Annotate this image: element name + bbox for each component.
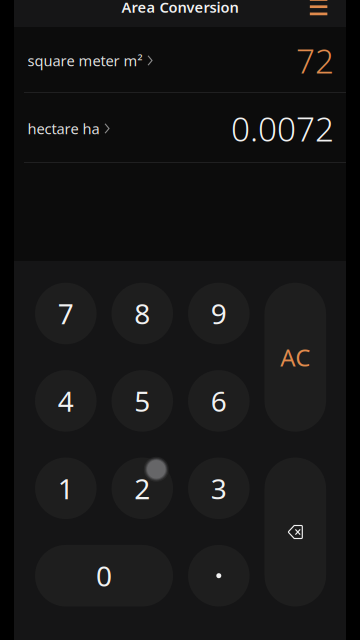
staticText: Area Conversion — [121, 0, 238, 17]
staticText: 2 — [134, 470, 150, 507]
button[interactable]: 7 — [35, 283, 96, 344]
staticText: hectare ha — [27, 119, 99, 138]
button[interactable]: 6 — [188, 370, 250, 432]
button[interactable]: square meter m² — [14, 27, 346, 92]
button[interactable]: hectare ha — [14, 93, 346, 162]
staticText: 72 — [296, 38, 334, 83]
staticText: 7 — [58, 295, 74, 332]
staticText: 8 — [134, 295, 150, 332]
button[interactable]: 4 — [35, 370, 96, 432]
staticText: 4 — [58, 382, 74, 419]
staticText: 5 — [134, 382, 150, 419]
button[interactable]: Delete — [265, 458, 326, 606]
button[interactable]: 1 — [35, 458, 96, 519]
staticText: 6 — [211, 382, 227, 419]
staticText: AC — [280, 341, 310, 373]
button[interactable]: 2 — [112, 458, 173, 519]
button[interactable]: 8 — [112, 283, 173, 344]
staticText: 3 — [211, 470, 227, 507]
button[interactable]: Clear — [265, 283, 326, 432]
staticText: square meter m² — [27, 51, 142, 70]
staticText: 9 — [211, 295, 227, 332]
button[interactable]: 5 — [112, 370, 173, 432]
button[interactable]: 3 — [188, 458, 250, 519]
staticText: 0.0072 — [231, 106, 334, 151]
button[interactable]: 0 — [35, 545, 173, 606]
button[interactable]: Decimal point — [188, 545, 250, 606]
button[interactable]: Menu — [310, 0, 346, 27]
button[interactable]: 9 — [188, 283, 250, 344]
staticText: 1 — [58, 470, 74, 507]
staticText: 0 — [96, 557, 112, 594]
